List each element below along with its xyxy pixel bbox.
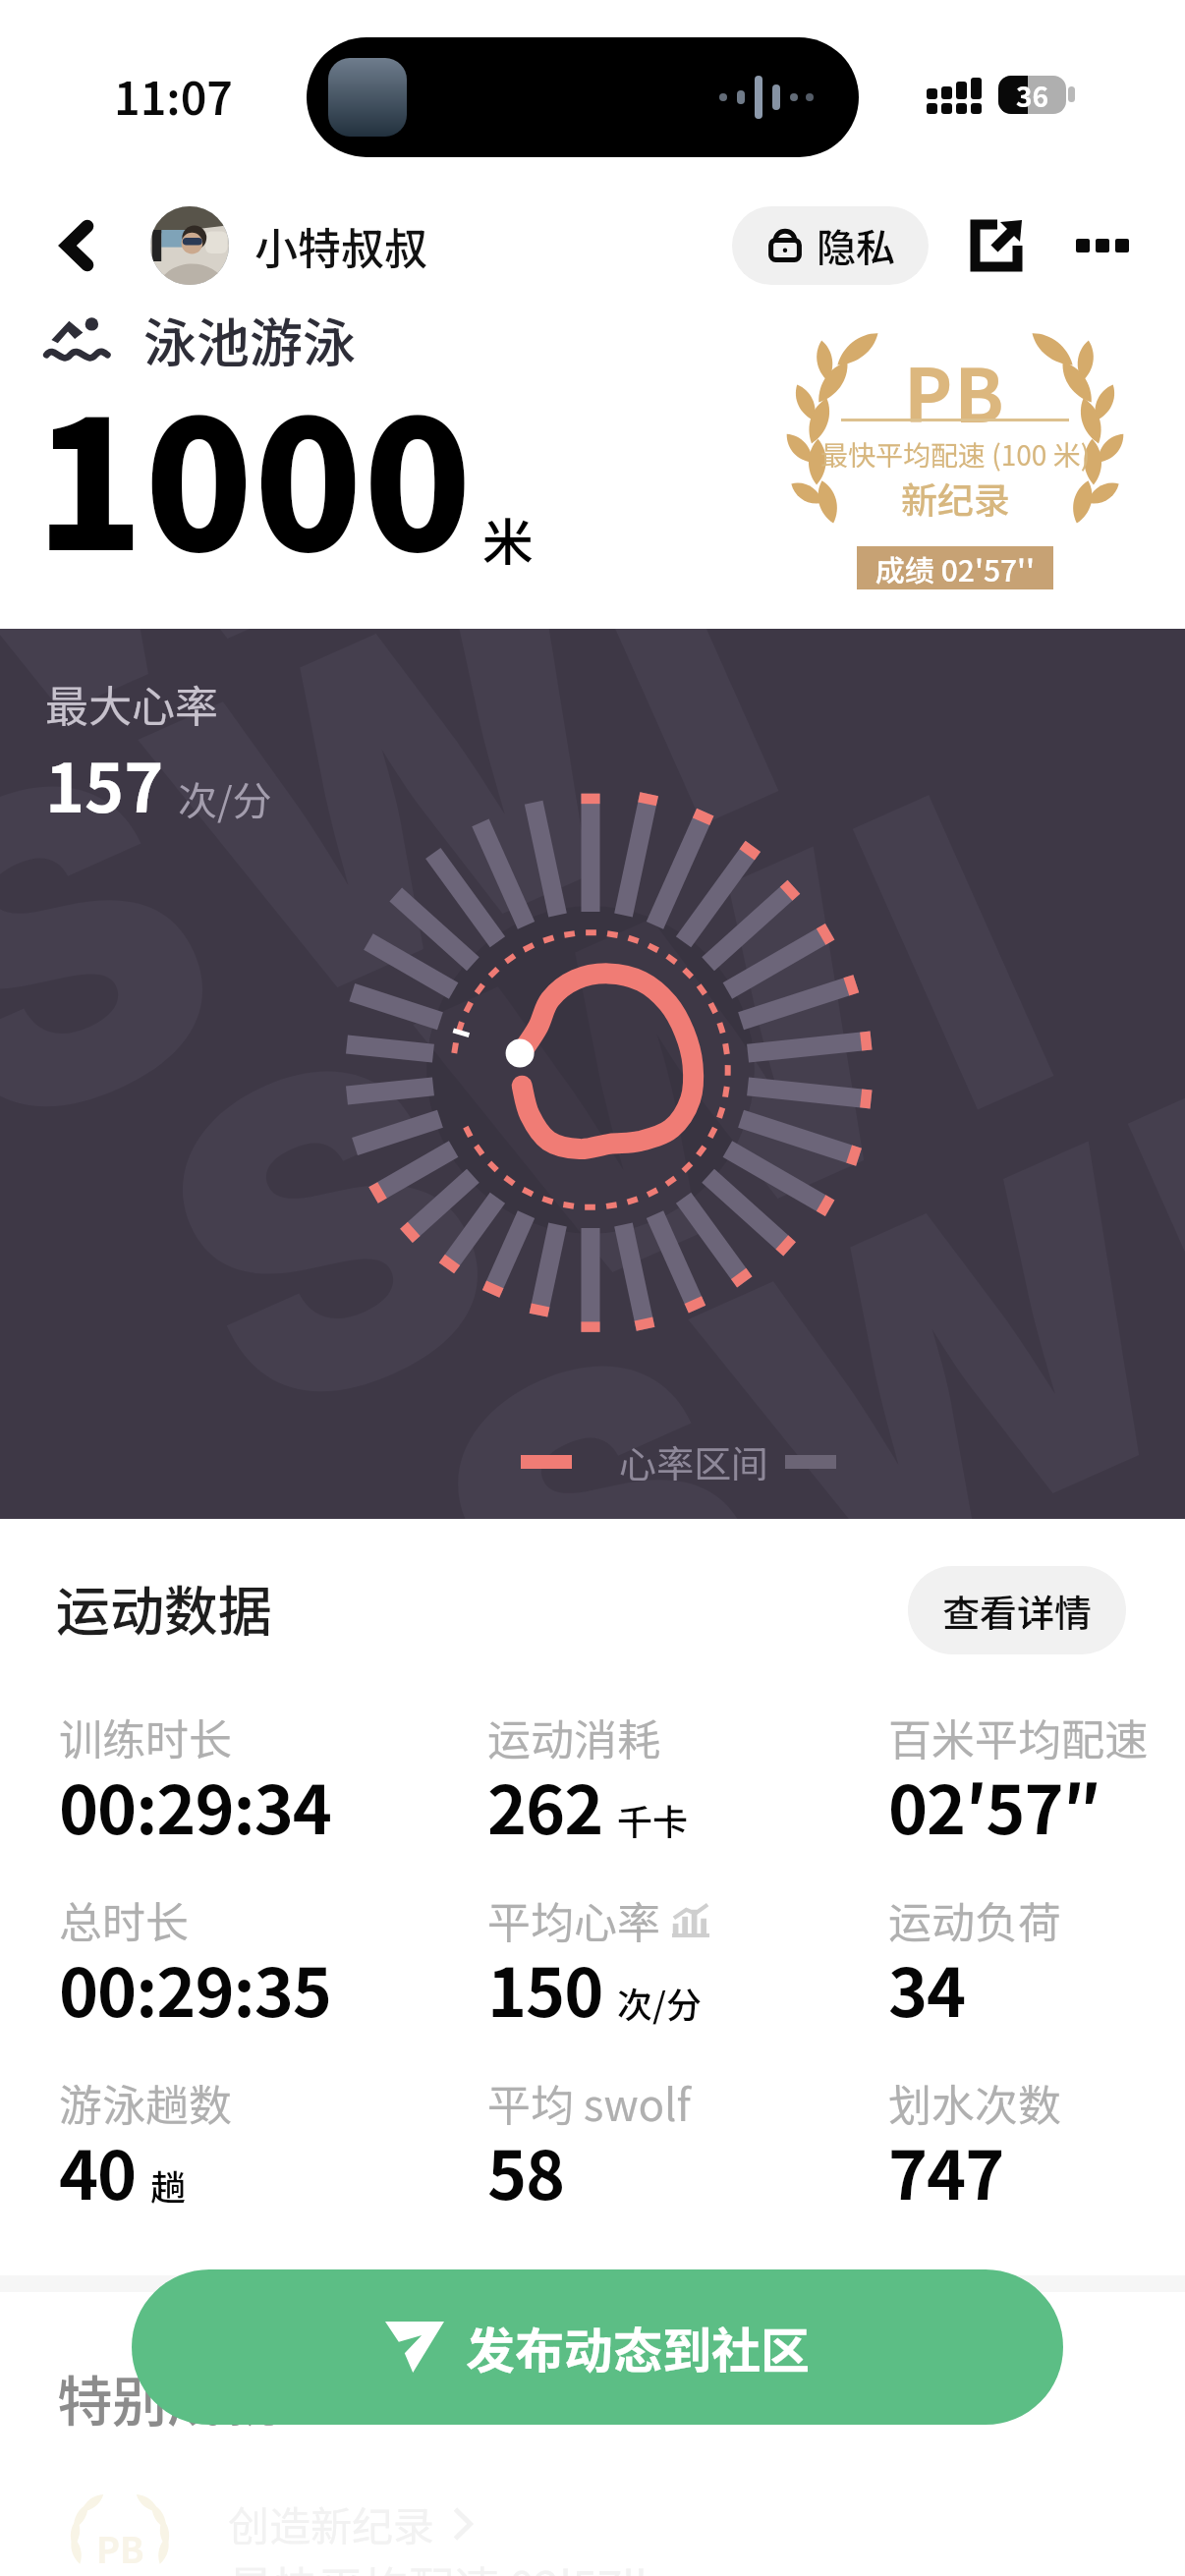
staticText: 游泳趟数 (59, 2071, 232, 2134)
staticText: 趟 (150, 2159, 187, 2211)
staticText: 36 (1016, 76, 1049, 114)
staticText: 02′57″ (888, 1757, 1100, 1853)
staticText: PB (96, 2522, 144, 2573)
staticText: 千卡 (617, 1794, 689, 1845)
staticText: SWIM (0, 629, 1072, 1156)
staticText: PB (904, 338, 1006, 443)
staticText: 00:29:34 (59, 1757, 331, 1853)
staticText: 最快平均配速 (100 米) (820, 434, 1091, 475)
button[interactable]: Back (31, 193, 122, 299)
staticText: 新纪录 (901, 472, 1010, 525)
staticText: 运动负荷 (888, 1888, 1061, 1951)
button[interactable]: Share (949, 193, 1044, 299)
staticText: 262 (487, 1757, 603, 1853)
staticText: SWIM (93, 629, 1185, 1441)
staticText: 百米平均配速 (888, 1706, 1148, 1768)
staticText: 最大心率 (45, 672, 218, 735)
staticText: 157 (45, 735, 164, 831)
staticText: 次/分 (178, 770, 272, 827)
staticText: 58 (487, 2122, 565, 2218)
staticText: 11:07 (114, 63, 234, 129)
staticText: 总时长 (59, 1888, 189, 1951)
staticText: 最快平均配速 02'57'' (228, 2552, 648, 2576)
staticText: 平均 swolf (487, 2071, 691, 2134)
staticText: 查看详情 (942, 1584, 1093, 1638)
staticText: 成绩 02'57'' (875, 547, 1035, 589)
staticText: 小特叔叔 (254, 214, 427, 277)
staticText: 训练时长 (59, 1706, 232, 1768)
staticText: 心率区间 (619, 1434, 769, 1488)
staticText: 747 (888, 2122, 1004, 2218)
staticText: 1000 (35, 344, 473, 601)
staticText: SWIM (0, 629, 797, 881)
staticText: 次/分 (617, 1977, 703, 2028)
button[interactable]: 查看详情 (908, 1566, 1126, 1654)
button[interactable]: 隐私 (732, 206, 929, 285)
staticText: 运动消耗 (487, 1706, 660, 1768)
button[interactable]: 小特叔叔 (150, 193, 427, 299)
staticText: 运动数据 (56, 1568, 273, 1647)
staticText: SWIM (368, 868, 1185, 1519)
staticText: 34 (888, 1939, 966, 2036)
button[interactable]: More options (1049, 193, 1156, 299)
staticText: 150 (487, 1939, 603, 2036)
staticText: 米 (482, 502, 535, 576)
staticText: 隐私 (817, 217, 895, 274)
staticText: 创造新纪录 (228, 2493, 435, 2553)
staticText: 泳池游泳 (143, 301, 356, 377)
staticText: 00:29:35 (59, 1939, 331, 2036)
staticText: 特别成就 (57, 2358, 277, 2437)
staticText: 发布动态到社区 (466, 2312, 810, 2382)
staticText: 平均心率 (487, 1888, 660, 1951)
button[interactable]: 发布动态到社区 (132, 2269, 1063, 2425)
staticText: 40 (59, 2122, 137, 2218)
staticText: 划水次数 (888, 2071, 1061, 2134)
